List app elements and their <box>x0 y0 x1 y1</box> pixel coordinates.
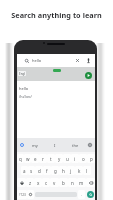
staticText: hello <box>32 58 42 63</box>
staticText: my <box>32 143 38 148</box>
staticText: y <box>58 156 61 162</box>
other: Voice search <box>86 58 91 63</box>
staticText: v <box>53 180 56 186</box>
button[interactable]: Listen <box>85 72 92 79</box>
staticText: I <box>54 143 56 148</box>
button[interactable]: n <box>68 178 77 187</box>
other: Settings <box>88 143 92 147</box>
staticText: hello <box>19 86 29 91</box>
staticText: u <box>66 156 69 162</box>
button[interactable]: m <box>77 178 86 187</box>
other: Clear <box>76 59 79 62</box>
staticText: i <box>74 156 76 162</box>
staticText: w <box>26 156 30 162</box>
staticText: h <box>62 168 65 174</box>
staticText: p <box>90 156 93 162</box>
button[interactable]: q <box>17 154 24 163</box>
button[interactable]: g <box>51 166 59 175</box>
button[interactable]: x <box>34 178 42 187</box>
button[interactable]: t <box>47 154 55 163</box>
button[interactable]: o <box>79 154 87 163</box>
button[interactable]: a <box>21 166 28 175</box>
staticText: m <box>79 180 84 186</box>
staticText: x <box>37 180 40 186</box>
button[interactable]: Shift <box>17 178 26 187</box>
button[interactable]: f <box>43 166 51 175</box>
staticText: q <box>19 156 22 162</box>
other: Google <box>20 143 24 147</box>
staticText: g <box>54 168 57 174</box>
staticText: k <box>78 168 81 174</box>
staticText: b <box>62 180 65 186</box>
staticText: l <box>86 168 88 174</box>
button[interactable]: hello <box>17 54 95 67</box>
button[interactable]: l <box>83 166 91 175</box>
button[interactable]: Emoji <box>27 190 34 199</box>
staticText: . <box>81 192 83 197</box>
staticText: c <box>45 180 48 186</box>
staticText: j <box>70 168 72 174</box>
staticText: e <box>34 156 37 162</box>
staticText: o <box>82 156 85 162</box>
button[interactable]: ?123 <box>17 190 27 199</box>
button[interactable]: Period <box>78 190 85 199</box>
button[interactable]: r <box>39 154 47 163</box>
button[interactable]: Backspace <box>86 178 95 187</box>
staticText: z <box>29 180 32 186</box>
staticText: r <box>42 156 44 162</box>
button[interactable]: e <box>31 154 39 163</box>
button[interactable]: b <box>59 178 68 187</box>
staticText: a <box>23 168 26 174</box>
staticText: the <box>72 143 79 148</box>
staticText: /həˈloʊ/ <box>19 94 32 99</box>
button[interactable]: Search <box>87 191 94 198</box>
button[interactable]: j <box>67 166 75 175</box>
button[interactable]: s <box>28 166 35 175</box>
button[interactable]: z <box>26 178 34 187</box>
staticText: f <box>46 168 48 174</box>
button[interactable]: k <box>75 166 83 175</box>
staticText: d <box>38 168 41 174</box>
staticText: Search anything to learn <box>0 10 113 20</box>
button[interactable]: u <box>63 154 71 163</box>
button[interactable]: Engl <box>18 71 26 76</box>
button[interactable]: d <box>35 166 43 175</box>
staticText: Engl <box>19 72 26 76</box>
button[interactable]: i <box>71 154 79 163</box>
staticText: s <box>30 168 33 174</box>
button[interactable]: v <box>50 178 59 187</box>
button[interactable]: h <box>59 166 67 175</box>
button[interactable]: w <box>24 154 31 163</box>
button[interactable]: c <box>42 178 50 187</box>
button[interactable]: p <box>87 154 95 163</box>
staticText: t <box>50 156 52 162</box>
button[interactable]: y <box>55 154 63 163</box>
staticText: n <box>71 180 74 186</box>
staticText: ?123 <box>19 193 26 197</box>
